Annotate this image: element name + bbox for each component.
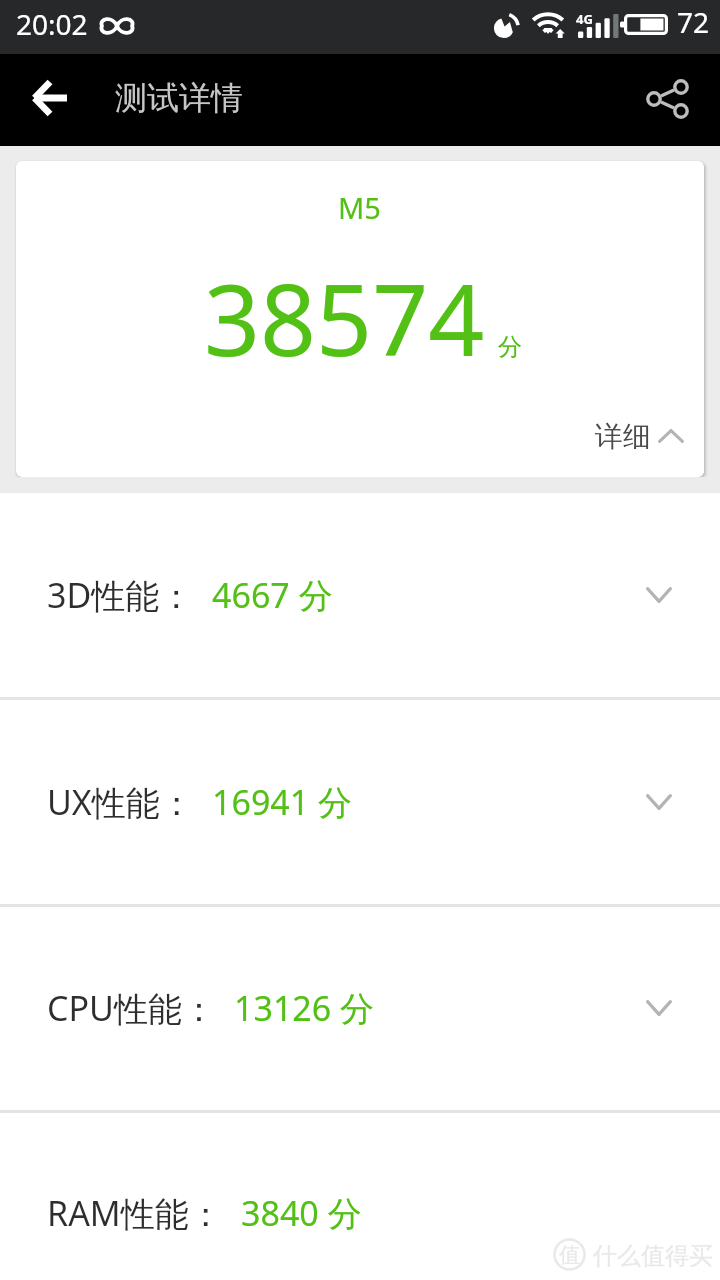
staticText: UX性能： xyxy=(47,779,194,825)
staticText: 4667 分 xyxy=(212,572,333,618)
staticText: 4G xyxy=(576,10,593,28)
staticText: RAM性能： xyxy=(47,1190,223,1236)
button[interactable]: 3D性能： xyxy=(0,493,720,697)
button[interactable]: M5 xyxy=(16,161,704,477)
staticText: 什么值得买 xyxy=(593,1241,713,1271)
staticText: 详细 xyxy=(595,419,651,454)
staticText: 3D性能： xyxy=(47,572,194,618)
staticText: M5 xyxy=(338,188,381,227)
button[interactable]: Share xyxy=(640,67,696,123)
button[interactable]: CPU性能： xyxy=(0,906,720,1110)
staticText: 测试详情 xyxy=(115,78,243,118)
staticText: 20:02 xyxy=(16,5,88,43)
button[interactable]: 详细 xyxy=(587,413,692,460)
staticText: 13126 分 xyxy=(234,985,375,1031)
staticText: 分 xyxy=(498,332,522,362)
button[interactable]: UX性能： xyxy=(0,699,720,904)
staticText: CPU性能： xyxy=(47,985,216,1031)
button[interactable]: Back xyxy=(22,68,78,124)
button[interactable]: RAM性能： xyxy=(0,1112,720,1280)
staticText: 3840 分 xyxy=(241,1190,362,1236)
staticText: 16941 分 xyxy=(212,779,353,825)
staticText: 72 xyxy=(677,3,710,41)
staticText: 值 xyxy=(559,1242,580,1268)
staticText: 38574 xyxy=(204,251,485,384)
